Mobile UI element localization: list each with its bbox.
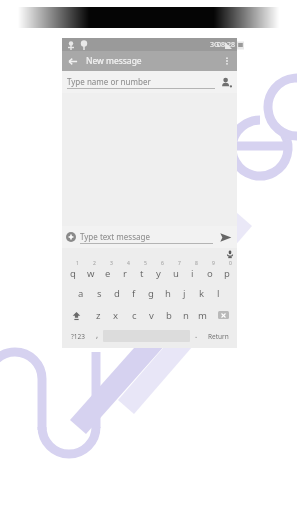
button[interactable]: m: [194, 304, 211, 326]
staticText: 0: [229, 260, 232, 267]
staticText: w: [87, 267, 95, 280]
button[interactable]: Add contact: [215, 71, 237, 93]
button[interactable]: b: [160, 304, 177, 326]
button[interactable]: l: [210, 282, 227, 304]
staticText: 2: [93, 260, 96, 267]
button[interactable]: More options: [217, 51, 237, 71]
button[interactable]: New message: [86, 55, 217, 67]
staticText: l: [217, 287, 220, 300]
button[interactable]: 8: [184, 260, 201, 282]
button[interactable]: Type text message: [80, 231, 213, 244]
staticText: ,: [96, 329, 99, 340]
button[interactable]: 3: [99, 260, 116, 282]
staticText: x: [113, 309, 119, 322]
button[interactable]: s: [90, 282, 108, 304]
staticText: Return: [208, 332, 229, 341]
button[interactable]: ,: [91, 326, 103, 346]
staticText: 08:28: [217, 40, 235, 50]
staticText: r: [123, 267, 127, 280]
button[interactable]: n: [177, 304, 194, 326]
staticText: s: [97, 287, 102, 300]
staticText: Type text message: [80, 231, 150, 242]
button[interactable]: 7: [167, 260, 184, 282]
staticText: 3: [110, 260, 113, 267]
button[interactable]: h: [159, 282, 176, 304]
button[interactable]: Voice input: [223, 248, 237, 260]
button[interactable]: ?123: [65, 326, 91, 346]
staticText: k: [199, 287, 205, 300]
staticText: 6: [161, 260, 164, 267]
button[interactable]: z: [89, 304, 107, 326]
button[interactable]: Backspace: [211, 304, 235, 326]
button[interactable]: 0: [218, 260, 235, 282]
button[interactable]: 9: [201, 260, 218, 282]
staticText: m: [198, 309, 207, 322]
button[interactable]: d: [108, 282, 125, 304]
button[interactable]: Send: [213, 226, 237, 248]
staticText: u: [173, 267, 179, 280]
button[interactable]: g: [142, 282, 159, 304]
button[interactable]: 2: [82, 260, 99, 282]
button[interactable]: Shift: [64, 304, 89, 326]
staticText: e: [105, 267, 111, 280]
staticText: y: [156, 267, 161, 280]
staticText: 7: [178, 260, 181, 267]
button[interactable]: 4: [116, 260, 133, 282]
staticText: d: [114, 287, 120, 300]
button[interactable]: .: [190, 326, 202, 346]
staticText: c: [132, 309, 137, 322]
staticText: g: [148, 287, 154, 300]
staticText: .: [195, 329, 198, 340]
staticText: 1: [76, 260, 79, 267]
staticText: ?123: [71, 332, 85, 341]
staticText: t: [140, 267, 144, 280]
staticText: 8: [195, 260, 198, 267]
button[interactable]: k: [193, 282, 210, 304]
staticText: Type name or number: [67, 76, 151, 87]
staticText: 9: [212, 260, 215, 267]
staticText: i: [191, 267, 194, 280]
button[interactable]: Return: [202, 326, 234, 346]
button[interactable]: c: [125, 304, 143, 326]
staticText: h: [165, 287, 171, 300]
staticText: p: [224, 267, 230, 280]
button[interactable]: v: [143, 304, 160, 326]
button[interactable]: Type name or number: [62, 71, 237, 93]
staticText: f: [132, 287, 136, 300]
button[interactable]: 6: [150, 260, 167, 282]
staticText: j: [183, 287, 186, 300]
staticText: q: [70, 267, 76, 280]
staticText: b: [166, 309, 172, 322]
button[interactable]: a: [72, 282, 90, 304]
button[interactable]: 5: [133, 260, 150, 282]
staticText: n: [183, 309, 189, 322]
staticText: 4: [127, 260, 130, 267]
button[interactable]: 1: [64, 260, 82, 282]
staticText: o: [207, 267, 213, 280]
button[interactable]: Add attachment: [62, 228, 80, 246]
staticText: z: [96, 309, 101, 322]
staticText: 5: [144, 260, 147, 267]
staticText: 3G: [210, 40, 220, 50]
button[interactable]: x: [107, 304, 125, 326]
button[interactable]: Back: [62, 51, 82, 71]
staticText: v: [149, 309, 154, 322]
button[interactable]: f: [125, 282, 142, 304]
button[interactable]: j: [176, 282, 193, 304]
staticText: a: [78, 287, 84, 300]
